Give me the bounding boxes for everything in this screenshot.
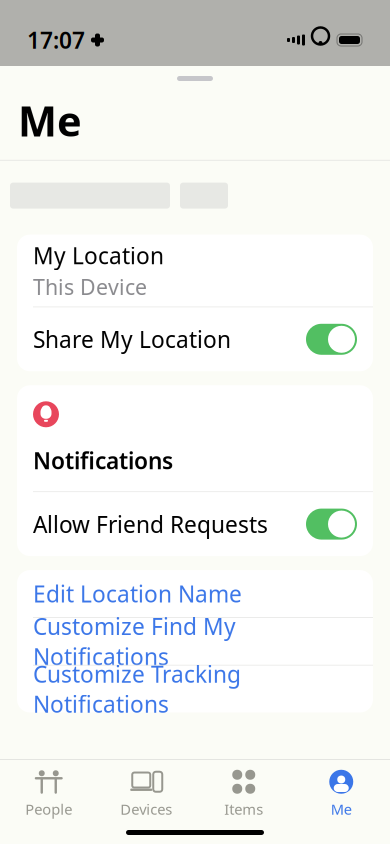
button[interactable]: Devices	[97, 769, 195, 818]
button[interactable]: People	[0, 769, 97, 818]
button[interactable]: Customize Find My Notifications	[17, 618, 373, 665]
staticText: This Device	[33, 272, 147, 301]
button[interactable]: Allow Friend Requests	[17, 492, 373, 556]
button[interactable]: My Location	[17, 235, 373, 307]
staticText: Customize Tracking Notifications	[33, 659, 241, 719]
staticText: Items	[224, 799, 263, 819]
staticText: Share My Location	[33, 324, 231, 354]
staticText: People	[25, 799, 72, 819]
staticText: Me	[331, 799, 352, 819]
button[interactable]: Customize Tracking Notifications	[17, 665, 373, 712]
button[interactable]: Items	[195, 769, 292, 818]
button[interactable]: Edit Location Name	[17, 570, 373, 617]
staticText: Me	[18, 93, 82, 148]
staticText: Help a Friend	[123, 754, 266, 785]
staticText: Devices	[120, 799, 172, 819]
staticText: Edit Location Name	[33, 578, 242, 609]
staticText: Notifications	[33, 445, 173, 475]
button[interactable]: Notifications	[17, 385, 373, 491]
button[interactable]: Share My Location	[17, 307, 373, 371]
staticText: My Location	[33, 240, 164, 270]
button[interactable]: Help a Friend	[109, 750, 280, 789]
staticText: Allow Friend Requests	[33, 509, 268, 539]
staticText: Open iCloud.com so others can sign in an…	[58, 797, 332, 844]
staticText: Customize Find My Notifications	[33, 611, 236, 671]
button[interactable]: Me	[292, 769, 390, 818]
staticText: 17:07	[27, 25, 85, 55]
